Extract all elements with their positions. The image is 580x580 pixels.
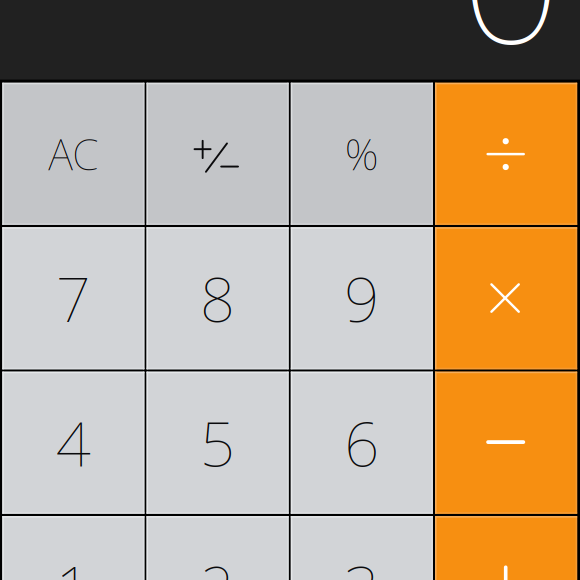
staticText: 8 <box>200 257 235 339</box>
staticText: % <box>345 125 379 182</box>
staticText: 9 <box>344 257 379 339</box>
staticText: 2 <box>200 546 235 580</box>
button[interactable]: 8 <box>147 227 289 369</box>
button[interactable]: 1 <box>2 516 144 580</box>
button[interactable]: Plus Minus <box>147 83 289 225</box>
staticText: 6 <box>344 402 379 483</box>
button[interactable]: 3 <box>291 516 433 580</box>
staticText: 3 <box>344 546 379 580</box>
staticText: AC <box>48 125 98 182</box>
button[interactable]: Add <box>435 516 577 580</box>
staticText: 1 <box>56 546 91 580</box>
button[interactable]: 6 <box>291 372 433 514</box>
staticText: 5 <box>200 402 235 483</box>
staticText: 7 <box>56 257 91 339</box>
button[interactable]: 2 <box>147 516 289 580</box>
staticText: 0 <box>460 0 562 92</box>
button[interactable]: Subtract <box>435 372 577 514</box>
staticText: 4 <box>56 402 91 483</box>
button[interactable]: Divide <box>435 83 577 225</box>
button[interactable]: 7 <box>2 227 144 369</box>
button[interactable]: 5 <box>147 372 289 514</box>
button[interactable]: Multiply <box>435 227 577 369</box>
button[interactable]: All Clear <box>2 83 144 225</box>
button[interactable]: 9 <box>291 227 433 369</box>
button[interactable]: Percent <box>291 83 433 225</box>
button[interactable]: 4 <box>2 372 144 514</box>
